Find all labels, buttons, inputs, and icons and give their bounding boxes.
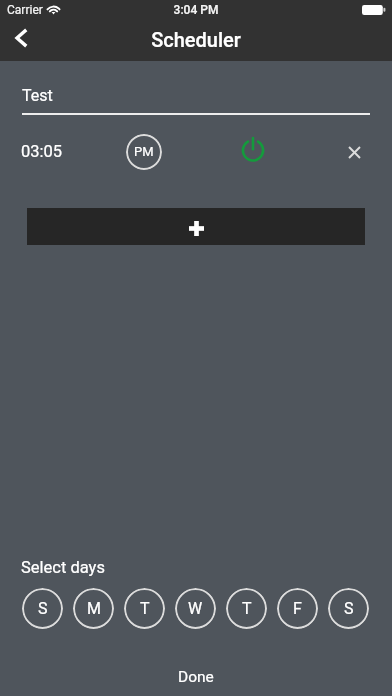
- button[interactable]: Done: [0, 660, 392, 694]
- staticText: T: [242, 599, 252, 618]
- staticText: T: [140, 599, 150, 618]
- button[interactable]: Toggle alarm: [233, 128, 273, 168]
- staticText: F: [293, 599, 302, 618]
- button[interactable]: Add time: [27, 208, 365, 245]
- staticText: 3:04 PM: [0, 3, 392, 17]
- staticText: Test: [22, 86, 53, 105]
- button[interactable]: 03:05: [12, 135, 112, 167]
- staticText: Carrier: [7, 3, 43, 17]
- staticText: Done: [178, 668, 214, 686]
- button[interactable]: T: [226, 588, 267, 629]
- button[interactable]: M: [73, 588, 114, 629]
- button[interactable]: PM: [126, 134, 162, 170]
- button[interactable]: S: [22, 588, 63, 629]
- staticText: S: [38, 599, 48, 618]
- staticText: W: [188, 599, 203, 618]
- button[interactable]: Schedule name: [22, 80, 370, 115]
- staticText: M: [87, 599, 101, 618]
- staticText: S: [344, 599, 354, 618]
- button[interactable]: Delete alarm: [339, 137, 369, 167]
- staticText: PM: [134, 144, 154, 159]
- staticText: 03:05: [21, 142, 63, 161]
- button[interactable]: Back: [1, 18, 41, 57]
- staticText: Scheduler: [0, 28, 392, 51]
- staticText: Select days: [21, 558, 105, 577]
- button[interactable]: W: [175, 588, 216, 629]
- button[interactable]: T: [124, 588, 165, 629]
- button[interactable]: S: [328, 588, 369, 629]
- button[interactable]: F: [277, 588, 318, 629]
